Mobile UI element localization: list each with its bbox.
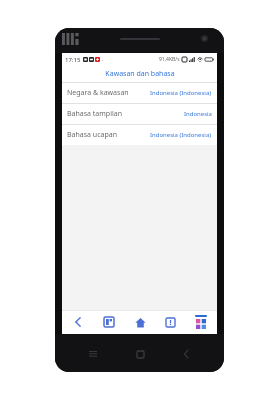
- staticText: Indonesia: [184, 110, 212, 118]
- button[interactable]: Recents: [84, 345, 102, 363]
- button[interactable]: Bahasa ucapan: [62, 125, 217, 145]
- button[interactable]: Apps: [186, 310, 216, 334]
- staticText: 17:15: [65, 56, 81, 64]
- staticText: Negara & kawasan: [67, 88, 129, 98]
- staticText: Bahasa ucapan: [67, 130, 118, 140]
- staticText: 91,4KB/s: [159, 56, 180, 63]
- button[interactable]: Negara & kawasan: [62, 83, 217, 103]
- button[interactable]: Notifications: [155, 310, 185, 334]
- staticText: Indonesia (Indonesia): [150, 131, 212, 139]
- button[interactable]: Windows: [94, 310, 124, 334]
- button[interactable]: Back: [177, 345, 195, 363]
- staticText: Indonesia (Indonesia): [150, 89, 212, 97]
- staticText: ·: [102, 56, 104, 64]
- staticText: Bahasa tampilan: [67, 109, 122, 119]
- button[interactable]: Bahasa tampilan: [62, 104, 217, 124]
- button[interactable]: Home: [125, 310, 155, 334]
- button[interactable]: Back: [63, 310, 93, 334]
- button[interactable]: Home: [131, 345, 149, 363]
- staticText: Kawasan dan bahasa: [105, 69, 175, 79]
